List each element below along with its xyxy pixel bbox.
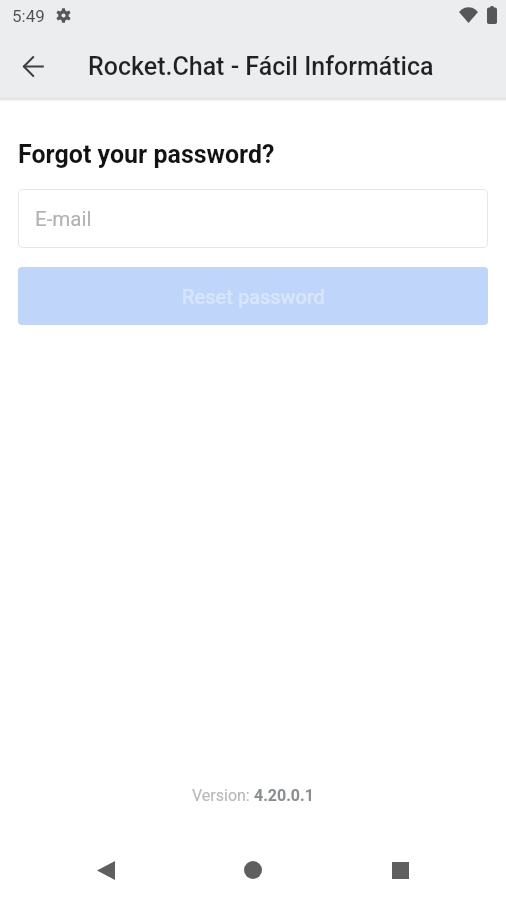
staticText: Rocket.Chat - Fácil Informática [88,52,434,81]
button[interactable]: Reset password [18,267,488,325]
button[interactable]: Navigate up [5,37,61,93]
button[interactable]: Recent apps [352,840,448,900]
staticText: Version: [192,786,254,805]
staticText: 5:49 [12,6,45,26]
staticText: Reset password [182,285,325,308]
button[interactable]: Home [205,840,301,900]
staticText: 4.20.0.1 [254,786,314,805]
staticText: Forgot your password? [18,140,275,169]
staticText: E-mail [35,207,92,231]
button[interactable]: E-mail [18,189,488,248]
button[interactable]: Back [58,840,154,900]
